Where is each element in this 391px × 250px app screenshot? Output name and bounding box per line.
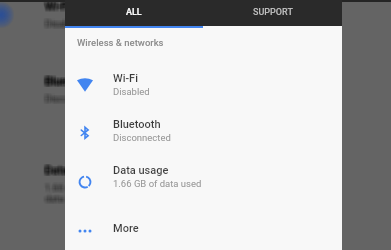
staticText: Disabled — [43, 17, 65, 28]
staticText: Wi-Fi — [47, 0, 65, 13]
staticText: 1.66 GB of data used — [44, 180, 65, 202]
button[interactable]: ALL — [65, 0, 203, 26]
staticText: 1.66 GB of data used — [46, 183, 65, 205]
staticText: Bluetooth — [45, 76, 65, 89]
staticText: 1.66 GB of data used — [45, 183, 65, 205]
staticText: Disabled — [43, 19, 65, 30]
staticText: Wi-Fi — [47, 0, 65, 12]
staticText: Disabled — [47, 17, 65, 28]
staticText: 1.66 GB of data used — [44, 184, 65, 206]
staticText: Wi-Fi — [43, 0, 65, 13]
staticText: Disabled — [46, 20, 65, 31]
staticText: Data usage — [46, 163, 65, 176]
staticText: Bluetooth — [46, 73, 65, 86]
staticText: Disconnected — [45, 93, 65, 104]
staticText: Wi-Fi — [45, 1, 65, 14]
staticText: Data usage — [45, 165, 65, 178]
staticText: Disconnected — [47, 91, 65, 102]
staticText: Disabled — [45, 19, 65, 30]
staticText: Bluetooth — [43, 74, 65, 87]
staticText: 1.66 GB of data used — [43, 182, 65, 204]
staticText: Data usage — [43, 165, 65, 178]
staticText: Data usage — [44, 163, 65, 176]
staticText: Data usage — [44, 164, 65, 177]
staticText: Disconnected — [44, 94, 65, 105]
staticText: 1.66 GB of data used — [44, 182, 65, 204]
staticText: Disconnected — [45, 95, 65, 106]
staticText: Data usage — [46, 166, 65, 179]
staticText: Bluetooth — [47, 77, 65, 90]
staticText: SUPPORT — [253, 7, 293, 18]
staticText: Disabled — [46, 16, 65, 27]
staticText: Wi-Fi — [46, 1, 65, 14]
staticText: Disabled — [44, 19, 65, 30]
staticText: Disconnected — [47, 93, 65, 104]
staticText: Disconnected — [44, 92, 65, 103]
staticText: Disabled — [47, 18, 65, 29]
staticText: Disabled — [44, 20, 65, 31]
staticText: Disconnected — [45, 94, 65, 105]
staticText: 1.66 GB of data used — [45, 180, 65, 202]
staticText: 1.66 GB of data used — [43, 181, 65, 203]
staticText: Bluetooth — [47, 75, 65, 88]
button[interactable]: SUPPORT — [203, 0, 342, 26]
staticText: Disconnected — [43, 92, 65, 103]
staticText: Bluetooth — [45, 73, 65, 86]
staticText: Disabled — [43, 16, 65, 27]
staticText: Disabled — [43, 20, 65, 31]
staticText: Data usage — [47, 163, 65, 176]
staticText: Disconnected — [46, 95, 65, 106]
staticText: Disabled — [46, 17, 65, 28]
staticText: 1.66 GB of data used — [47, 182, 65, 204]
staticText: Wi-Fi — [43, 2, 65, 15]
staticText: Bluetooth — [43, 77, 65, 90]
staticText: 1.66 GB of data used — [45, 181, 65, 203]
button[interactable]: Data usage — [65, 153, 342, 199]
staticText: 1.66 GB of data used — [113, 178, 202, 189]
staticText: More — [113, 222, 139, 235]
staticText: Disconnected — [44, 95, 65, 106]
staticText: Data usage — [46, 162, 65, 175]
staticText: Wi-Fi — [47, 0, 65, 11]
staticText: Disabled — [45, 16, 65, 27]
staticText: Disconnected — [47, 94, 65, 105]
staticText: Wi-Fi — [43, 0, 65, 12]
staticText: Data usage — [46, 164, 65, 177]
staticText: Data usage — [47, 165, 65, 178]
staticText: Wi-Fi — [44, 0, 65, 13]
staticText: Disabled — [45, 20, 65, 31]
staticText: Wi-Fi — [47, 1, 65, 14]
staticText: Disabled — [47, 19, 65, 30]
staticText: Data usage — [43, 164, 65, 177]
staticText: 1.66 GB of data used — [43, 183, 65, 205]
staticText: Disconnected — [113, 132, 171, 143]
staticText: Bluetooth — [47, 76, 65, 89]
staticText: Data usage — [43, 163, 65, 176]
staticText: Bluetooth — [43, 76, 65, 89]
staticText: Bluetooth — [44, 73, 65, 86]
staticText: Disconnected — [46, 93, 65, 104]
staticText: Wi-Fi — [45, 0, 65, 12]
staticText: 1.66 GB of data used — [45, 182, 65, 204]
button[interactable]: Wi-Fi — [65, 61, 342, 107]
staticText: Data usage — [45, 166, 65, 179]
staticText: Disconnected — [46, 92, 65, 103]
staticText: Wi-Fi — [43, 1, 65, 14]
staticText: Bluetooth — [113, 118, 161, 131]
staticText: Wi-Fi — [46, 0, 65, 12]
staticText: Bluetooth — [46, 74, 65, 87]
staticText: Bluetooth — [45, 74, 65, 87]
staticText: Bluetooth — [44, 77, 65, 90]
button[interactable]: More — [65, 207, 342, 250]
button[interactable]: Bluetooth — [65, 107, 342, 153]
staticText: 1.66 GB of data used — [44, 183, 65, 205]
staticText: Disabled — [43, 18, 65, 29]
staticText: Bluetooth — [44, 74, 65, 87]
staticText: Disconnected — [44, 93, 65, 104]
staticText: Wi-Fi — [44, 1, 65, 14]
staticText: Data usage — [47, 164, 65, 177]
staticText: Disconnected — [45, 92, 65, 103]
staticText: 1.66 GB of data used — [44, 181, 65, 203]
staticText: Data usage — [43, 166, 65, 179]
staticText: Disconnected — [45, 91, 65, 102]
